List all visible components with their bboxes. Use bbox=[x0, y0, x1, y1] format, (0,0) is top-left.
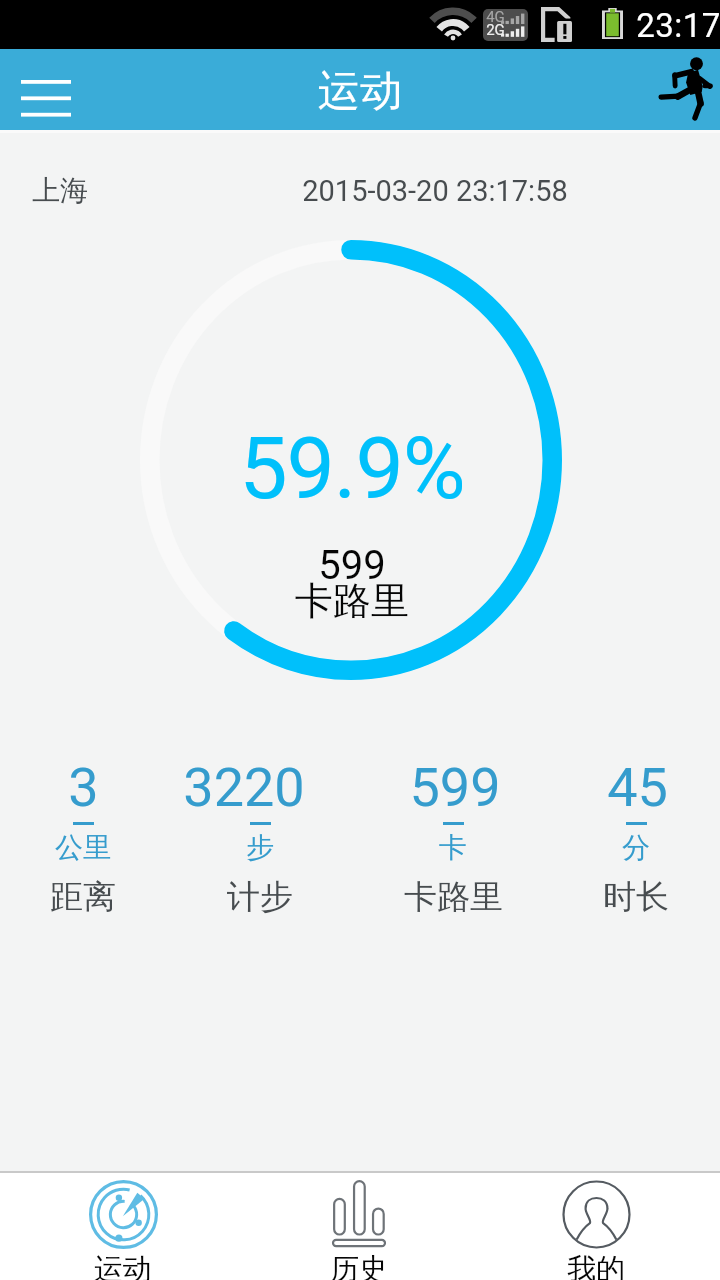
button[interactable]: 599 bbox=[354, 756, 552, 918]
staticText: 599 bbox=[409, 756, 501, 819]
staticText: 卡路里 bbox=[404, 876, 503, 918]
staticText: 2015-03-20 23:17:58 bbox=[302, 174, 568, 208]
staticText: 23:17 bbox=[636, 6, 720, 45]
staticText: 历史 bbox=[330, 1251, 388, 1280]
staticText: 我的 bbox=[567, 1251, 625, 1280]
staticText: 分 bbox=[622, 830, 650, 865]
staticText: 运动 bbox=[94, 1251, 152, 1280]
button[interactable]: 3220 bbox=[166, 756, 354, 918]
staticText: 步 bbox=[246, 830, 274, 865]
staticText: 2G bbox=[486, 21, 505, 39]
staticText: 计步 bbox=[227, 876, 293, 918]
button[interactable]: 运动 bbox=[0, 1173, 240, 1280]
button[interactable]: Start run bbox=[636, 49, 720, 130]
staticText: 4G bbox=[486, 8, 505, 26]
button[interactable]: Menu bbox=[0, 49, 92, 130]
staticText: 距离 bbox=[50, 876, 116, 918]
staticText: 卡 bbox=[439, 830, 467, 865]
button[interactable]: 3 bbox=[0, 756, 166, 918]
staticText: 3220 bbox=[183, 756, 305, 819]
button[interactable]: 45 bbox=[552, 756, 720, 918]
button[interactable]: 历史 bbox=[240, 1173, 480, 1280]
staticText: 公里 bbox=[55, 830, 111, 865]
staticText: 时长 bbox=[603, 876, 669, 918]
staticText: 上海 bbox=[32, 173, 88, 208]
staticText: 卡路里 bbox=[295, 577, 409, 625]
staticText: 运动 bbox=[318, 65, 402, 118]
staticText: 59.9% bbox=[239, 418, 465, 519]
staticText: 599 bbox=[318, 542, 386, 589]
staticText: 45 bbox=[607, 756, 668, 819]
button[interactable]: 我的 bbox=[480, 1173, 720, 1280]
staticText: 3 bbox=[68, 756, 99, 819]
